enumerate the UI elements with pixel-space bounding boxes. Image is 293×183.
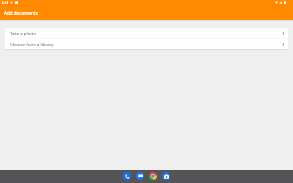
button[interactable]: Chrome: [149, 172, 157, 180]
button[interactable]: Choose from a library: [5, 39, 288, 49]
button[interactable]: Phone: [123, 172, 131, 180]
staticText: Take a photo: [10, 30, 36, 36]
staticText: Add documents: [4, 10, 38, 16]
button[interactable]: Camera: [162, 172, 170, 180]
button[interactable]: Take a photo: [5, 28, 288, 38]
staticText: Choose from a library: [10, 41, 54, 47]
button[interactable]: Messages: [136, 172, 144, 180]
